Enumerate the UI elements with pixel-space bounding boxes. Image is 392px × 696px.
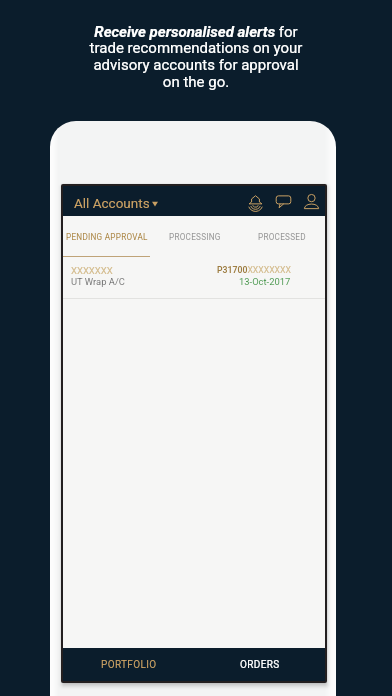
staticText: 13-Oct-2017 bbox=[239, 276, 291, 287]
button[interactable]: XXXXXXX bbox=[63, 257, 325, 299]
staticText: P31700XXXXXXXX bbox=[217, 265, 291, 275]
button[interactable]: Notifications bbox=[244, 190, 266, 212]
staticText: PROCESSED bbox=[258, 232, 306, 242]
staticText: XXXXXXX bbox=[71, 265, 113, 276]
button[interactable]: PROCESSED bbox=[238, 220, 325, 253]
staticText: PORTFOLIO bbox=[101, 659, 157, 671]
button[interactable]: PROCESSING bbox=[151, 220, 238, 253]
staticText: Receive personalised alerts for trade re… bbox=[85, 23, 307, 91]
button[interactable]: Profile bbox=[300, 190, 322, 212]
staticText: UT Wrap A/C bbox=[71, 276, 125, 287]
staticText: ORDERS bbox=[240, 659, 280, 671]
button[interactable]: PORTFOLIO bbox=[63, 648, 194, 681]
staticText: All Accounts bbox=[74, 195, 150, 211]
button[interactable]: All Accounts bbox=[74, 190, 158, 212]
button[interactable]: ORDERS bbox=[194, 648, 325, 681]
staticText: PROCESSING bbox=[169, 232, 221, 242]
staticText: PENDING APPROVAL bbox=[66, 232, 148, 242]
button[interactable]: PENDING APPROVAL bbox=[63, 220, 151, 253]
button[interactable]: Messages bbox=[272, 190, 294, 212]
